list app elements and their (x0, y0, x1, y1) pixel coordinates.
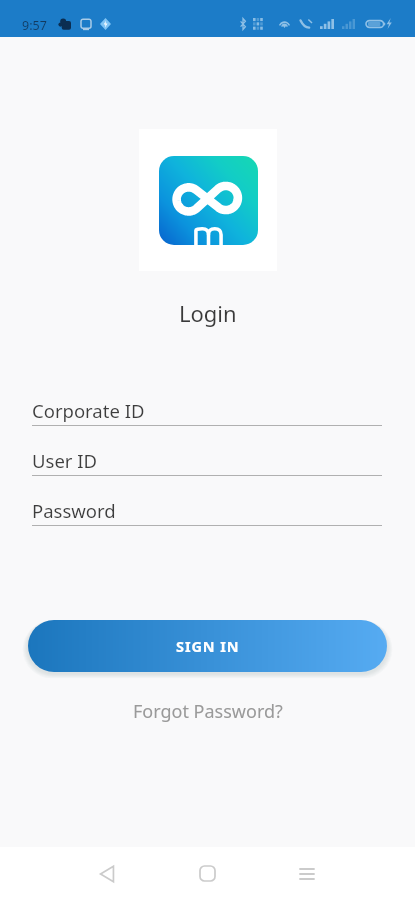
button[interactable]: Forgot Password? (123, 693, 293, 730)
button[interactable]: Corporate ID (32, 398, 382, 426)
button[interactable]: User ID (32, 448, 382, 476)
staticText: User ID (32, 448, 98, 473)
staticText: Login (179, 298, 237, 328)
staticText: Password (32, 498, 116, 523)
button[interactable]: Password (32, 498, 382, 526)
staticText: Corporate ID (32, 398, 145, 423)
button[interactable]: Back (84, 847, 130, 900)
staticText: 9:57 (22, 17, 47, 34)
staticText: SIGN IN (176, 636, 240, 656)
button[interactable]: Recent apps (284, 847, 330, 900)
button[interactable]: Home (184, 847, 230, 900)
staticText: Forgot Password? (133, 699, 283, 724)
button[interactable]: SIGN IN (28, 620, 387, 672)
